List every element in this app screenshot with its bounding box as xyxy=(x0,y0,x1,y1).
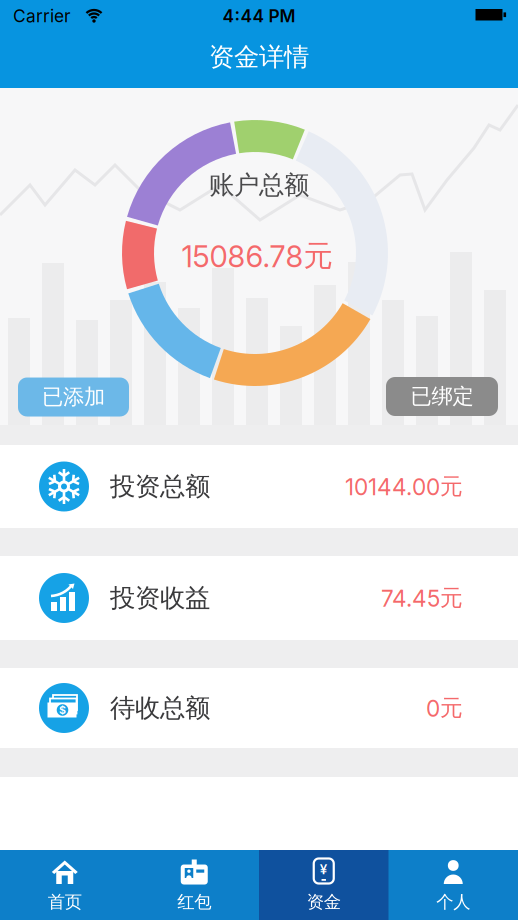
staticText: 个人 xyxy=(436,891,470,913)
button[interactable]: 个人 xyxy=(388,850,518,920)
staticText: $ xyxy=(59,704,66,716)
staticText: 10144.00元 xyxy=(345,473,463,500)
button[interactable]: 首页 xyxy=(0,850,129,920)
staticText: 0元 xyxy=(426,694,463,722)
button[interactable]: 已绑定 xyxy=(386,377,498,416)
button[interactable]: $ xyxy=(0,668,518,748)
staticText: 15086.78元 xyxy=(181,238,332,274)
staticText: ¥ xyxy=(320,862,328,877)
staticText: 账户总额 xyxy=(209,169,309,200)
staticText: 待收总额 xyxy=(110,692,210,723)
button[interactable]: ¥ xyxy=(259,850,388,920)
staticText: 资金详情 xyxy=(209,41,309,72)
staticText: Carrier xyxy=(13,6,71,26)
staticText: 红包 xyxy=(177,891,211,913)
staticText: 首页 xyxy=(48,891,82,913)
button[interactable]: 已添加 xyxy=(18,377,129,416)
staticText: 4:44 PM xyxy=(222,6,295,26)
staticText: 投资总额 xyxy=(110,471,210,502)
button[interactable]: 投资总额 xyxy=(0,445,518,528)
button[interactable]: 红包 xyxy=(129,850,259,920)
button[interactable]: 投资收益 xyxy=(0,556,518,640)
staticText: 资金 xyxy=(307,891,341,913)
staticText: 74.45元 xyxy=(381,584,463,612)
staticText: 已添加 xyxy=(42,384,105,410)
staticText: 投资收益 xyxy=(110,582,210,613)
staticText: 已绑定 xyxy=(410,383,473,410)
